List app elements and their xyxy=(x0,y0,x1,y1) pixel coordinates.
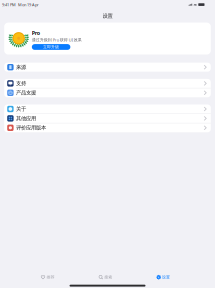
staticText: 设置 xyxy=(102,13,112,19)
staticText: 立即升级 xyxy=(43,44,59,49)
staticText: 推荐 xyxy=(46,275,54,280)
staticText: 搜索 xyxy=(104,275,112,280)
button[interactable]: 支持 xyxy=(4,79,211,88)
button[interactable]: 立即升级 xyxy=(32,44,70,50)
button[interactable]: 搜索 xyxy=(99,274,112,281)
staticText: 评价应用版本 xyxy=(16,124,46,131)
staticText: 关于 xyxy=(16,106,26,112)
staticText: 9:41 PM Mon 19 Apr xyxy=(2,2,39,7)
button[interactable]: 关于 xyxy=(4,104,211,113)
button[interactable]: 推荐 xyxy=(41,274,54,281)
staticText: 设置 xyxy=(162,275,170,280)
staticText: Pro xyxy=(32,29,40,36)
button[interactable]: 产品支援 xyxy=(4,88,211,97)
staticText: 来源 xyxy=(16,64,26,70)
button[interactable]: 来源 xyxy=(4,63,211,72)
staticText: 其他应用 xyxy=(16,115,36,122)
button[interactable]: 评价应用版本 xyxy=(4,123,211,132)
button[interactable]: 设置 xyxy=(157,274,170,281)
button[interactable]: 其他应用 xyxy=(4,114,211,123)
staticText: 通过升级到 Pro 获得 UI 效果 xyxy=(32,37,82,42)
staticText: 产品支援 xyxy=(16,89,36,96)
staticText: 支持 xyxy=(16,80,26,87)
